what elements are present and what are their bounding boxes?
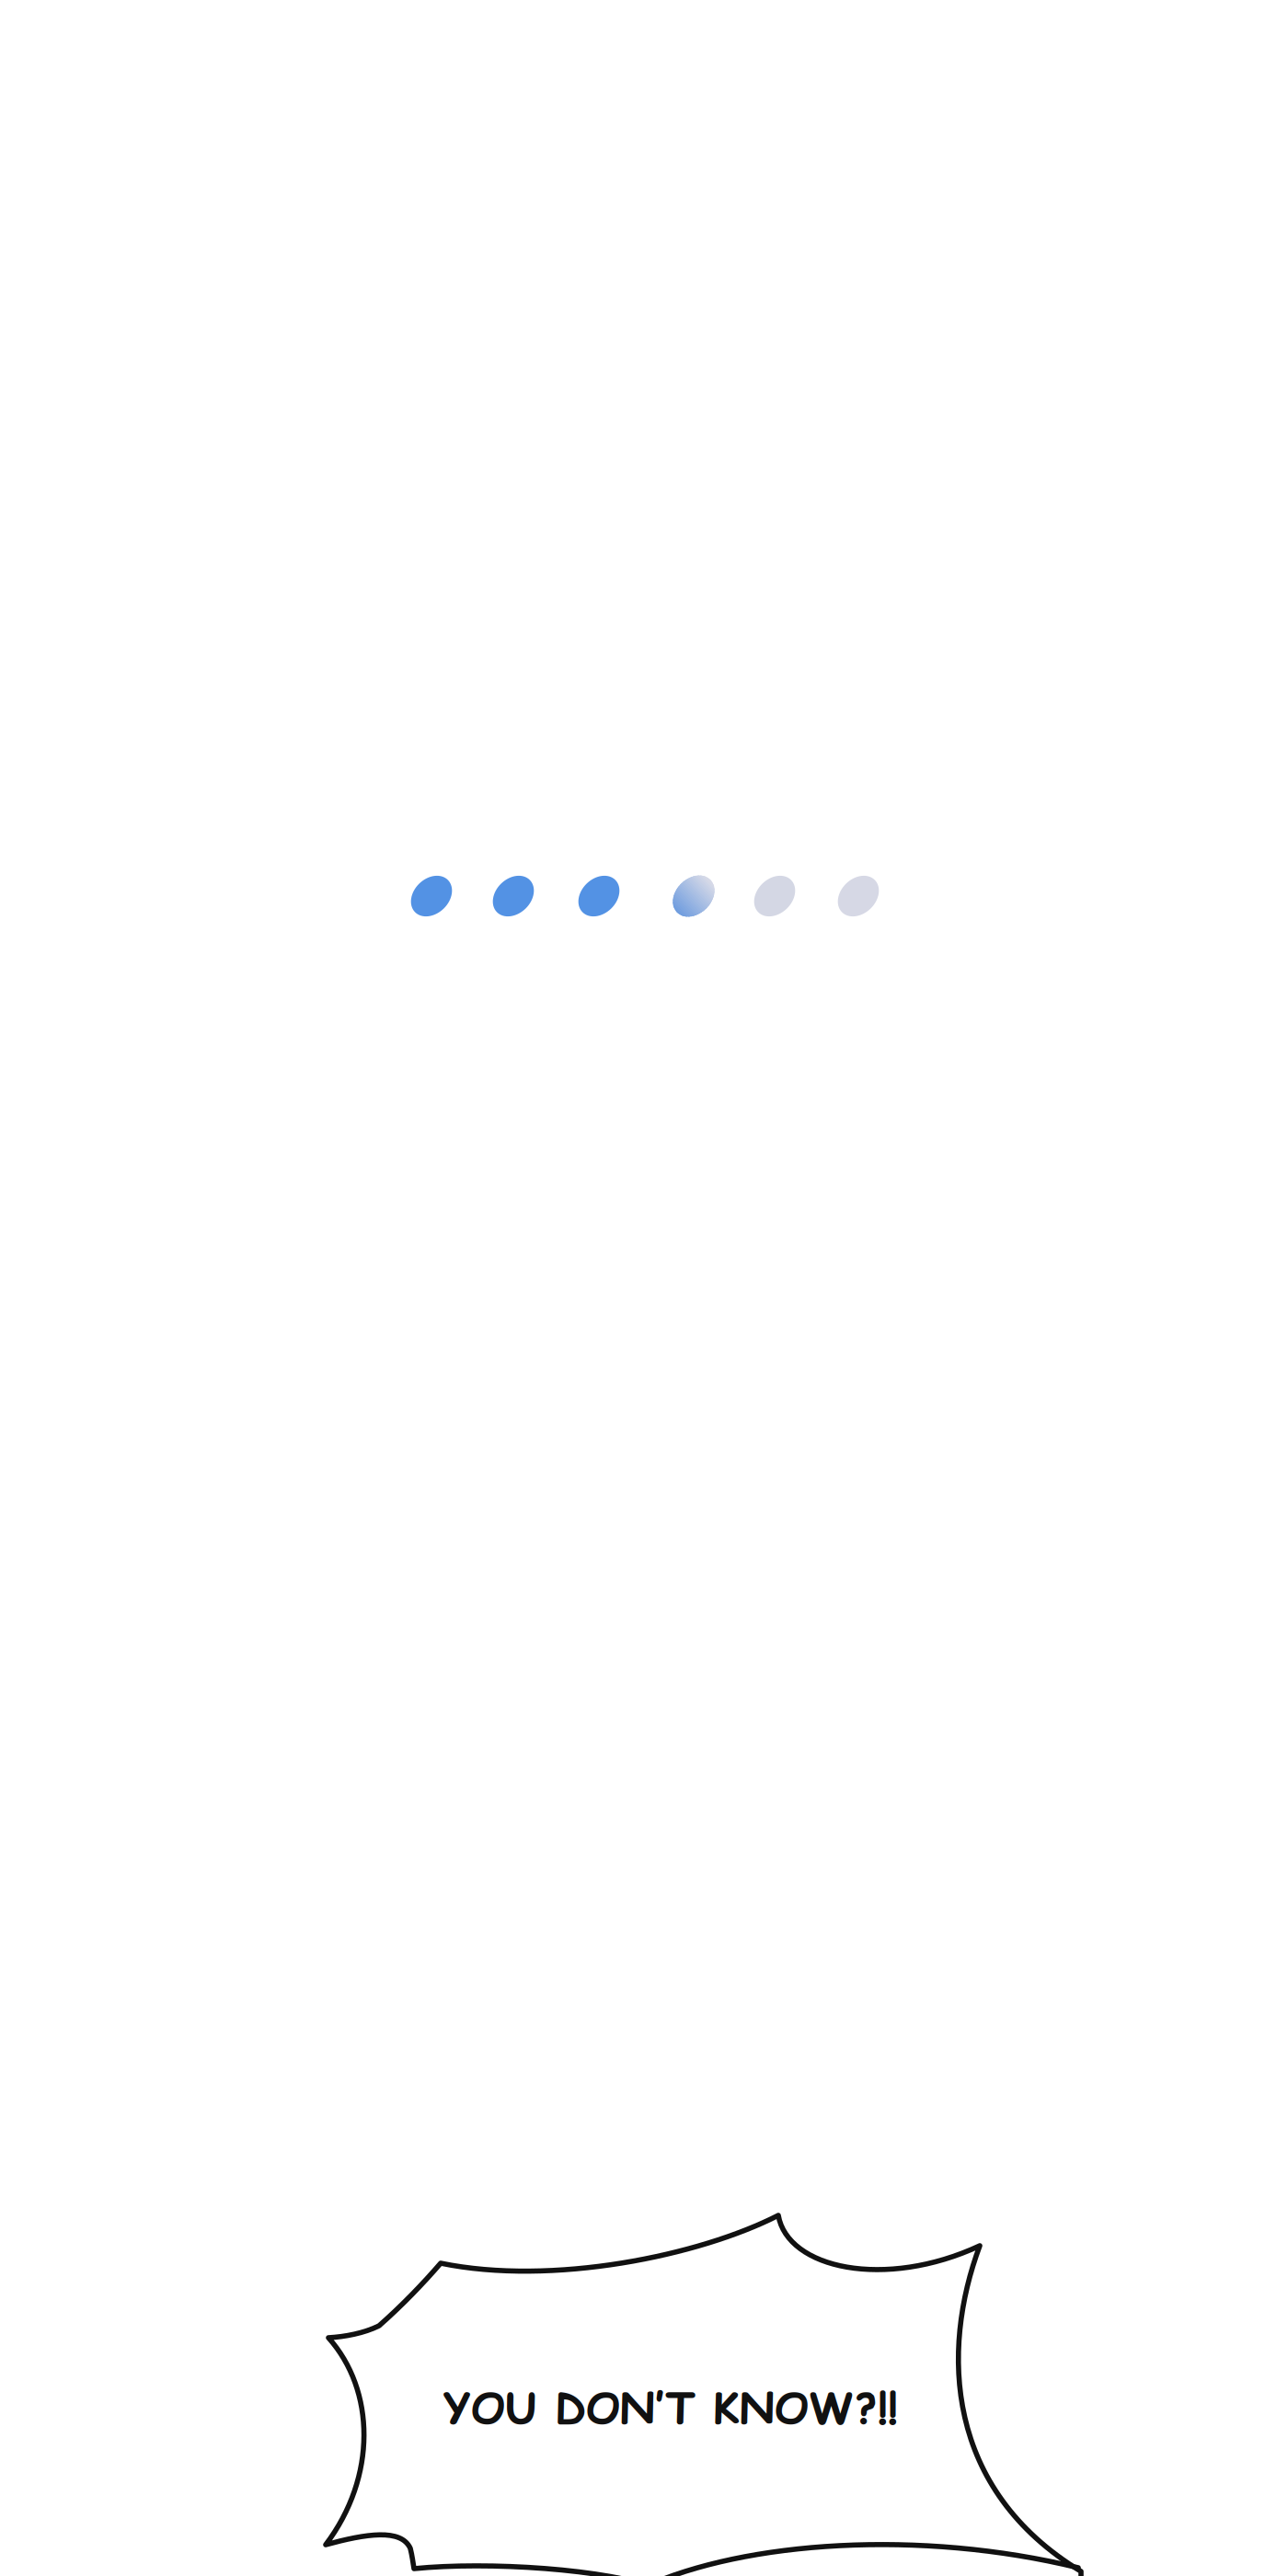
staticText: YOU DON’T KNOW?!! (443, 2378, 898, 2438)
button[interactable]: Comic page, tap to show reader controls (0, 0, 1288, 2576)
